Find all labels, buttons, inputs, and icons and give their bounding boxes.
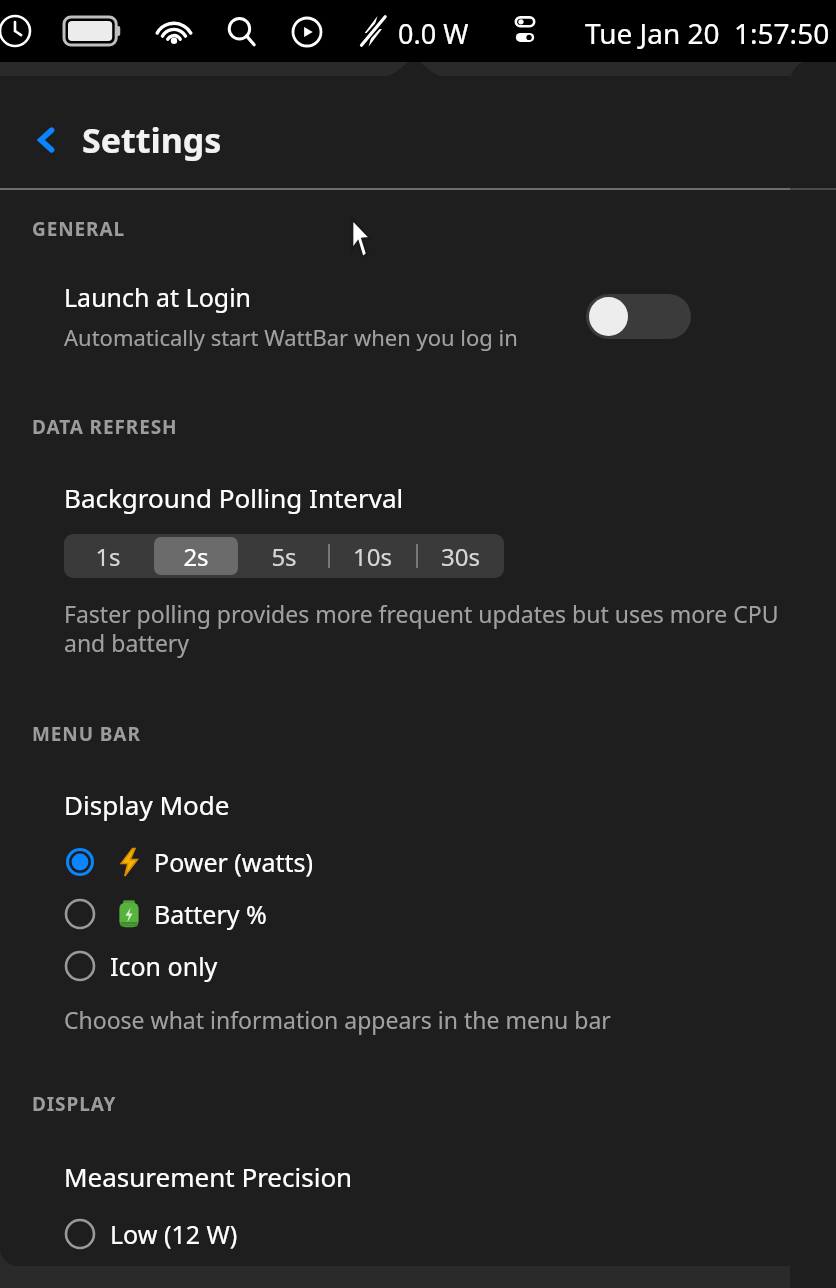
other: Spotlight Search bbox=[226, 16, 258, 48]
button[interactable]: Icon only bbox=[64, 940, 836, 992]
button[interactable]: Battery % bbox=[64, 888, 836, 940]
staticText: DATA REFRESH bbox=[32, 414, 178, 440]
staticText: DISPLAY bbox=[32, 1091, 117, 1117]
button[interactable]: Back bbox=[30, 123, 64, 157]
button[interactable]: 5s bbox=[242, 537, 326, 575]
staticText: 2s bbox=[183, 540, 209, 573]
staticText: 10s bbox=[353, 540, 392, 573]
staticText: Faster polling provides more frequent up… bbox=[64, 598, 802, 659]
staticText: 5s bbox=[271, 540, 297, 573]
button[interactable]: Launch at Login bbox=[64, 280, 691, 352]
staticText: Tue Jan 20 1:57:50 P bbox=[585, 14, 836, 52]
button[interactable]: 1s bbox=[66, 537, 150, 575]
staticText: 1s bbox=[95, 540, 121, 573]
staticText: Settings bbox=[82, 117, 222, 163]
staticText: Choose what information appears in the m… bbox=[64, 1004, 611, 1035]
button[interactable]: 10s bbox=[330, 537, 414, 575]
button[interactable]: 30s bbox=[418, 537, 502, 575]
other: Time Machine bbox=[0, 14, 32, 48]
staticText: 30s bbox=[441, 540, 480, 573]
button[interactable]: Back bbox=[0, 92, 836, 188]
staticText: Icon only bbox=[110, 949, 218, 983]
staticText: Measurement Precision bbox=[64, 1159, 353, 1194]
button[interactable]: Low (12 W) bbox=[64, 1208, 836, 1260]
other: WattBar bbox=[357, 14, 389, 48]
staticText: GENERAL bbox=[32, 216, 126, 242]
staticText: 0.0 W bbox=[398, 15, 469, 52]
staticText: Display Mode bbox=[64, 787, 230, 822]
other: Wi-Fi bbox=[156, 17, 192, 45]
staticText: Low (12 W) bbox=[110, 1217, 238, 1251]
staticText: Power (watts) bbox=[154, 845, 314, 879]
staticText: Battery % bbox=[154, 897, 267, 931]
staticText: Launch at Login bbox=[64, 280, 252, 314]
staticText: MENU BAR bbox=[32, 721, 141, 747]
button[interactable]: Power (watts) bbox=[64, 836, 836, 888]
staticText: Automatically start WattBar when you log… bbox=[64, 322, 518, 352]
button[interactable]: Launch at Login toggle bbox=[586, 294, 691, 339]
button[interactable]: 2s bbox=[154, 537, 238, 575]
other: Now Playing bbox=[291, 16, 323, 48]
other: Control Center bbox=[508, 14, 542, 48]
staticText: Background Polling Interval bbox=[64, 480, 404, 515]
